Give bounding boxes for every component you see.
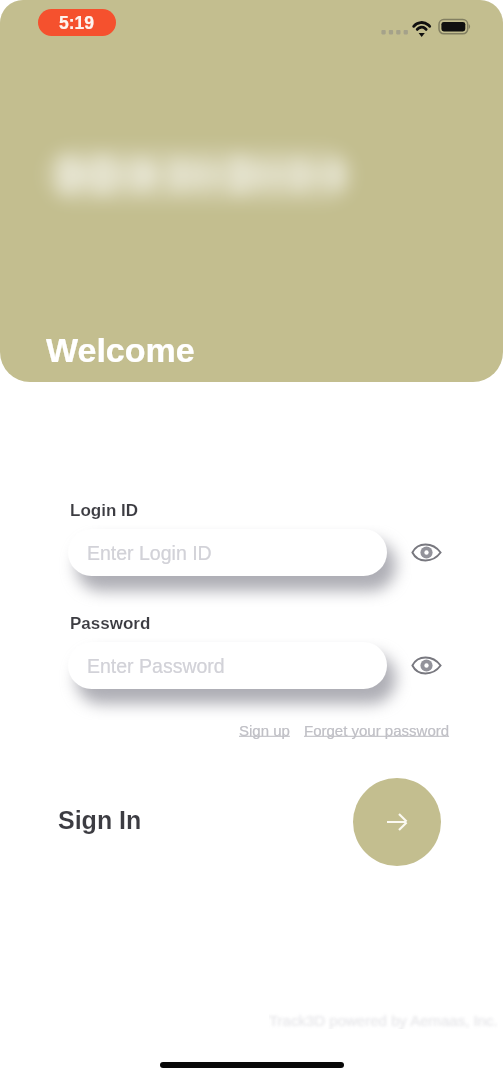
staticText: Welcome bbox=[46, 331, 195, 369]
staticText: Password bbox=[70, 614, 151, 633]
button[interactable]: Sign up bbox=[237, 722, 292, 739]
staticText: Login ID bbox=[70, 501, 138, 520]
button[interactable]: Enter Password bbox=[68, 642, 387, 689]
button[interactable]: Show password bbox=[406, 532, 446, 572]
button[interactable]: Show password bbox=[406, 645, 446, 685]
button[interactable]: Sign In bbox=[58, 806, 142, 834]
button[interactable]: Sign In bbox=[353, 778, 441, 866]
staticText: 5:19 bbox=[59, 13, 95, 33]
staticText: Enter Password bbox=[87, 655, 225, 677]
staticText: Track3D powered by Aemaas, Inc. bbox=[269, 1012, 498, 1029]
button[interactable]: Forget your password bbox=[302, 722, 452, 739]
button[interactable]: Enter Login ID bbox=[68, 529, 387, 576]
staticText: Enter Login ID bbox=[87, 542, 212, 564]
